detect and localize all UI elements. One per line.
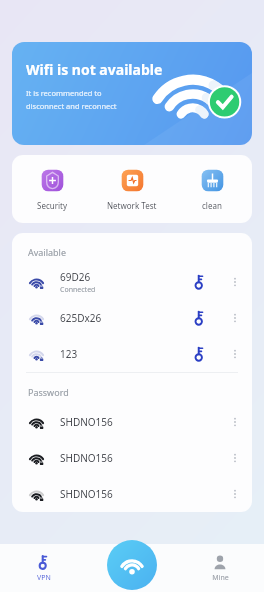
staticText: Mine [212,573,229,583]
staticText: 69D26 [60,270,91,284]
staticText: SHDNO156 [60,487,113,501]
staticText: 625Dx26 [60,311,102,325]
staticText: clean [202,200,222,211]
staticText: Connected [60,285,96,295]
staticText: Security [37,200,68,211]
button[interactable]: SHDNO156 [12,476,252,512]
button[interactable]: SHDNO156 [12,440,252,476]
staticText: disconnect and reconnect [26,101,117,111]
button[interactable]: More options [226,309,244,327]
button[interactable]: Connect with password [192,346,208,362]
staticText: Wifi is not available [26,60,163,79]
staticText: SHDNO156 [60,415,113,429]
button[interactable]: More options [226,413,244,431]
button[interactable]: Network Test [92,155,172,223]
button[interactable]: More options [226,485,244,503]
staticText: 123 [60,347,78,361]
button[interactable]: More options [226,345,244,363]
staticText: Available [28,246,66,258]
button[interactable]: More options [226,273,244,291]
button[interactable]: 123 [12,336,252,372]
button[interactable]: More options [226,449,244,467]
staticText: VPN [37,573,51,583]
button[interactable]: 69D26 [12,264,252,300]
button[interactable]: 625Dx26 [12,300,252,336]
button[interactable]: Connect with password [192,310,208,326]
button[interactable]: Connect with password [192,274,208,290]
button[interactable]: VPN [0,544,88,592]
button[interactable]: Wifi is not available [12,42,252,145]
button[interactable]: clean [172,155,252,223]
button[interactable]: Wifi scan [107,540,157,590]
staticText: Network Test [107,200,157,211]
button[interactable]: SHDNO156 [12,404,252,440]
staticText: SHDNO156 [60,451,113,465]
button[interactable]: Mine [176,544,264,592]
button[interactable]: Security [12,155,92,223]
staticText: Password [28,386,69,398]
staticText: It is recommended to [26,88,102,98]
